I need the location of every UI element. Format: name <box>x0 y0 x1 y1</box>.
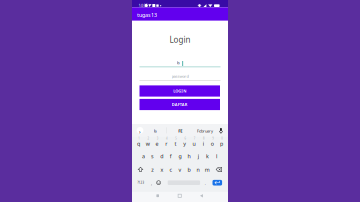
staticText: DAFTAR <box>172 102 188 107</box>
staticText: m <box>205 166 210 173</box>
staticText: . <box>205 180 206 186</box>
staticText: 6 <box>184 137 186 140</box>
staticText: j <box>198 153 199 160</box>
staticText: u <box>192 140 195 147</box>
staticText: 2 <box>147 137 149 140</box>
staticText: › <box>139 128 141 135</box>
staticText: l <box>216 153 217 160</box>
button[interactable]: DAFTAR <box>139 99 220 110</box>
staticText: 5 <box>175 137 177 140</box>
staticText: 4 <box>166 137 168 140</box>
staticText: fa <box>153 128 156 133</box>
staticText: 14:05 <box>139 3 148 8</box>
staticText: n <box>197 166 200 173</box>
staticText: v <box>178 166 181 173</box>
staticText: x <box>160 166 163 173</box>
staticText: a <box>142 153 145 160</box>
staticText: h <box>188 153 191 160</box>
staticText: LOGIN <box>173 88 186 94</box>
staticText: Login <box>169 34 190 45</box>
staticText: t <box>174 140 176 147</box>
staticText: d <box>160 153 163 160</box>
staticText: 3 <box>157 137 159 140</box>
staticText: 9 <box>212 137 214 140</box>
staticText: FE <box>178 128 182 133</box>
staticText: g <box>178 153 181 160</box>
staticText: 7 <box>194 137 196 140</box>
staticText: 8 <box>203 137 205 140</box>
staticText: c <box>169 166 172 173</box>
staticText: z <box>151 166 154 173</box>
staticText: p <box>220 140 223 147</box>
staticText: r <box>165 140 167 147</box>
staticText: q <box>137 140 140 147</box>
staticText: b <box>187 166 190 173</box>
staticText: 0 <box>221 137 223 140</box>
staticText: o <box>211 140 214 147</box>
staticText: e <box>155 140 158 147</box>
staticText: y <box>183 140 186 147</box>
staticText: , <box>151 180 152 186</box>
staticText: tugas13 <box>137 11 157 18</box>
staticText: 1 <box>138 137 140 140</box>
staticText: February <box>197 128 213 133</box>
staticText: k <box>206 153 209 160</box>
staticText: f <box>170 153 172 160</box>
staticText: ?123 <box>137 181 144 184</box>
staticText: s <box>151 153 154 160</box>
staticText: fa <box>176 60 179 65</box>
button[interactable]: LOGIN <box>139 85 220 97</box>
staticText: i <box>203 140 204 147</box>
staticText: w <box>146 140 150 147</box>
staticText: password <box>171 74 188 79</box>
